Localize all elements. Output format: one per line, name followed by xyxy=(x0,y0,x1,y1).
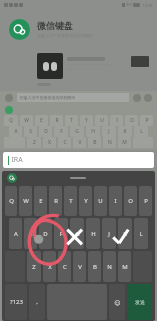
button[interactable]: Q xyxy=(4,115,18,126)
button[interactable]: U xyxy=(95,115,108,126)
button[interactable]: H xyxy=(86,218,100,249)
staticText: S xyxy=(29,128,32,135)
staticText: R xyxy=(55,117,59,124)
button[interactable]: N xyxy=(103,251,116,282)
button[interactable]: T xyxy=(65,115,78,126)
button[interactable]: More xyxy=(144,94,152,102)
button[interactable]: I xyxy=(110,115,123,126)
button[interactable]: W xyxy=(19,186,32,216)
button[interactable]: R xyxy=(49,186,62,216)
button[interactable]: U xyxy=(94,186,107,216)
button[interactable]: I xyxy=(109,186,122,216)
button[interactable]: Emoji xyxy=(133,94,141,102)
staticText: N xyxy=(108,139,112,146)
staticText: I xyxy=(114,197,117,205)
staticText: N xyxy=(107,263,112,271)
button[interactable]: O xyxy=(124,186,137,216)
button[interactable]: K xyxy=(118,126,132,137)
button[interactable]: D xyxy=(39,126,52,137)
button[interactable]: C xyxy=(58,251,71,282)
button[interactable]: Q xyxy=(5,186,17,216)
button[interactable]: Z xyxy=(27,251,41,282)
button[interactable]: Y xyxy=(79,186,92,216)
button[interactable]: E xyxy=(35,115,48,126)
button[interactable]: B xyxy=(88,251,101,282)
button[interactable]: W xyxy=(20,115,33,126)
staticText: G xyxy=(75,230,80,238)
staticText: A xyxy=(14,230,18,238)
button[interactable]: C xyxy=(58,137,71,148)
button[interactable]: A xyxy=(9,126,22,137)
button[interactable]: WeChat keyboard xyxy=(7,173,17,183)
button[interactable]: 微信键盘 xyxy=(9,10,157,48)
button[interactable]: M xyxy=(118,251,131,282)
staticText: F xyxy=(60,128,63,135)
button[interactable]: Send xyxy=(127,284,152,320)
button[interactable]: Y xyxy=(80,115,93,126)
button[interactable]: K xyxy=(118,218,132,249)
button[interactable]: J xyxy=(102,126,116,137)
staticText: V xyxy=(78,263,82,271)
button[interactable]: Voice input xyxy=(5,94,13,102)
button[interactable]: H xyxy=(86,126,100,137)
staticText: T xyxy=(69,197,73,205)
button[interactable]: V xyxy=(73,137,86,148)
staticText: P xyxy=(144,197,148,205)
staticText: J xyxy=(108,128,110,135)
button[interactable]: G xyxy=(70,126,84,137)
button[interactable]: F xyxy=(54,126,68,137)
staticText: F xyxy=(59,230,63,238)
staticText: 80% xyxy=(126,3,132,7)
staticText: E xyxy=(40,117,43,124)
button[interactable]: IRA xyxy=(3,152,154,168)
button[interactable]: X xyxy=(43,251,56,282)
button[interactable]: S xyxy=(24,218,37,249)
staticText: M xyxy=(122,139,127,146)
staticText: D xyxy=(44,128,48,135)
button[interactable]: , xyxy=(29,284,45,320)
button[interactable]: Z xyxy=(27,137,41,148)
button[interactable]: D xyxy=(39,218,52,249)
button[interactable]: O xyxy=(125,115,138,126)
button[interactable]: 在输入法中直接发送内容到聊天 xyxy=(17,93,129,102)
button[interactable]: F xyxy=(54,218,68,249)
button[interactable]: R xyxy=(50,115,63,126)
staticText: ☺ xyxy=(114,299,121,306)
button[interactable]: ?123 xyxy=(5,284,27,320)
staticText: L xyxy=(140,128,143,135)
button[interactable]: A xyxy=(9,218,22,249)
button[interactable]: L xyxy=(134,126,148,137)
staticText: , xyxy=(36,298,38,306)
staticText: J xyxy=(108,230,110,238)
button[interactable]: X xyxy=(43,137,56,148)
button[interactable]: P xyxy=(140,115,153,126)
button[interactable]: B xyxy=(88,137,101,148)
button[interactable]: S xyxy=(24,126,37,137)
staticText: G xyxy=(75,128,79,135)
staticText: H xyxy=(91,230,96,238)
button[interactable]: N xyxy=(103,137,116,148)
button[interactable]: Emoji xyxy=(109,284,125,320)
staticText: X xyxy=(48,263,52,271)
button[interactable]: L xyxy=(134,218,148,249)
button[interactable]: G xyxy=(70,218,84,249)
staticText: Z xyxy=(33,139,36,146)
staticText: K xyxy=(123,128,127,135)
staticText: Q xyxy=(9,197,14,205)
button[interactable]: P xyxy=(139,186,152,216)
button[interactable]: V xyxy=(73,251,86,282)
button[interactable]: E xyxy=(34,186,47,216)
button[interactable]: T xyxy=(64,186,77,216)
staticText: B xyxy=(93,139,97,146)
staticText: S xyxy=(29,230,33,238)
button[interactable]: M xyxy=(118,137,131,148)
staticText: C xyxy=(63,263,67,271)
button[interactable]: J xyxy=(102,218,116,249)
staticText: M xyxy=(122,263,128,271)
staticText: P xyxy=(145,117,149,124)
